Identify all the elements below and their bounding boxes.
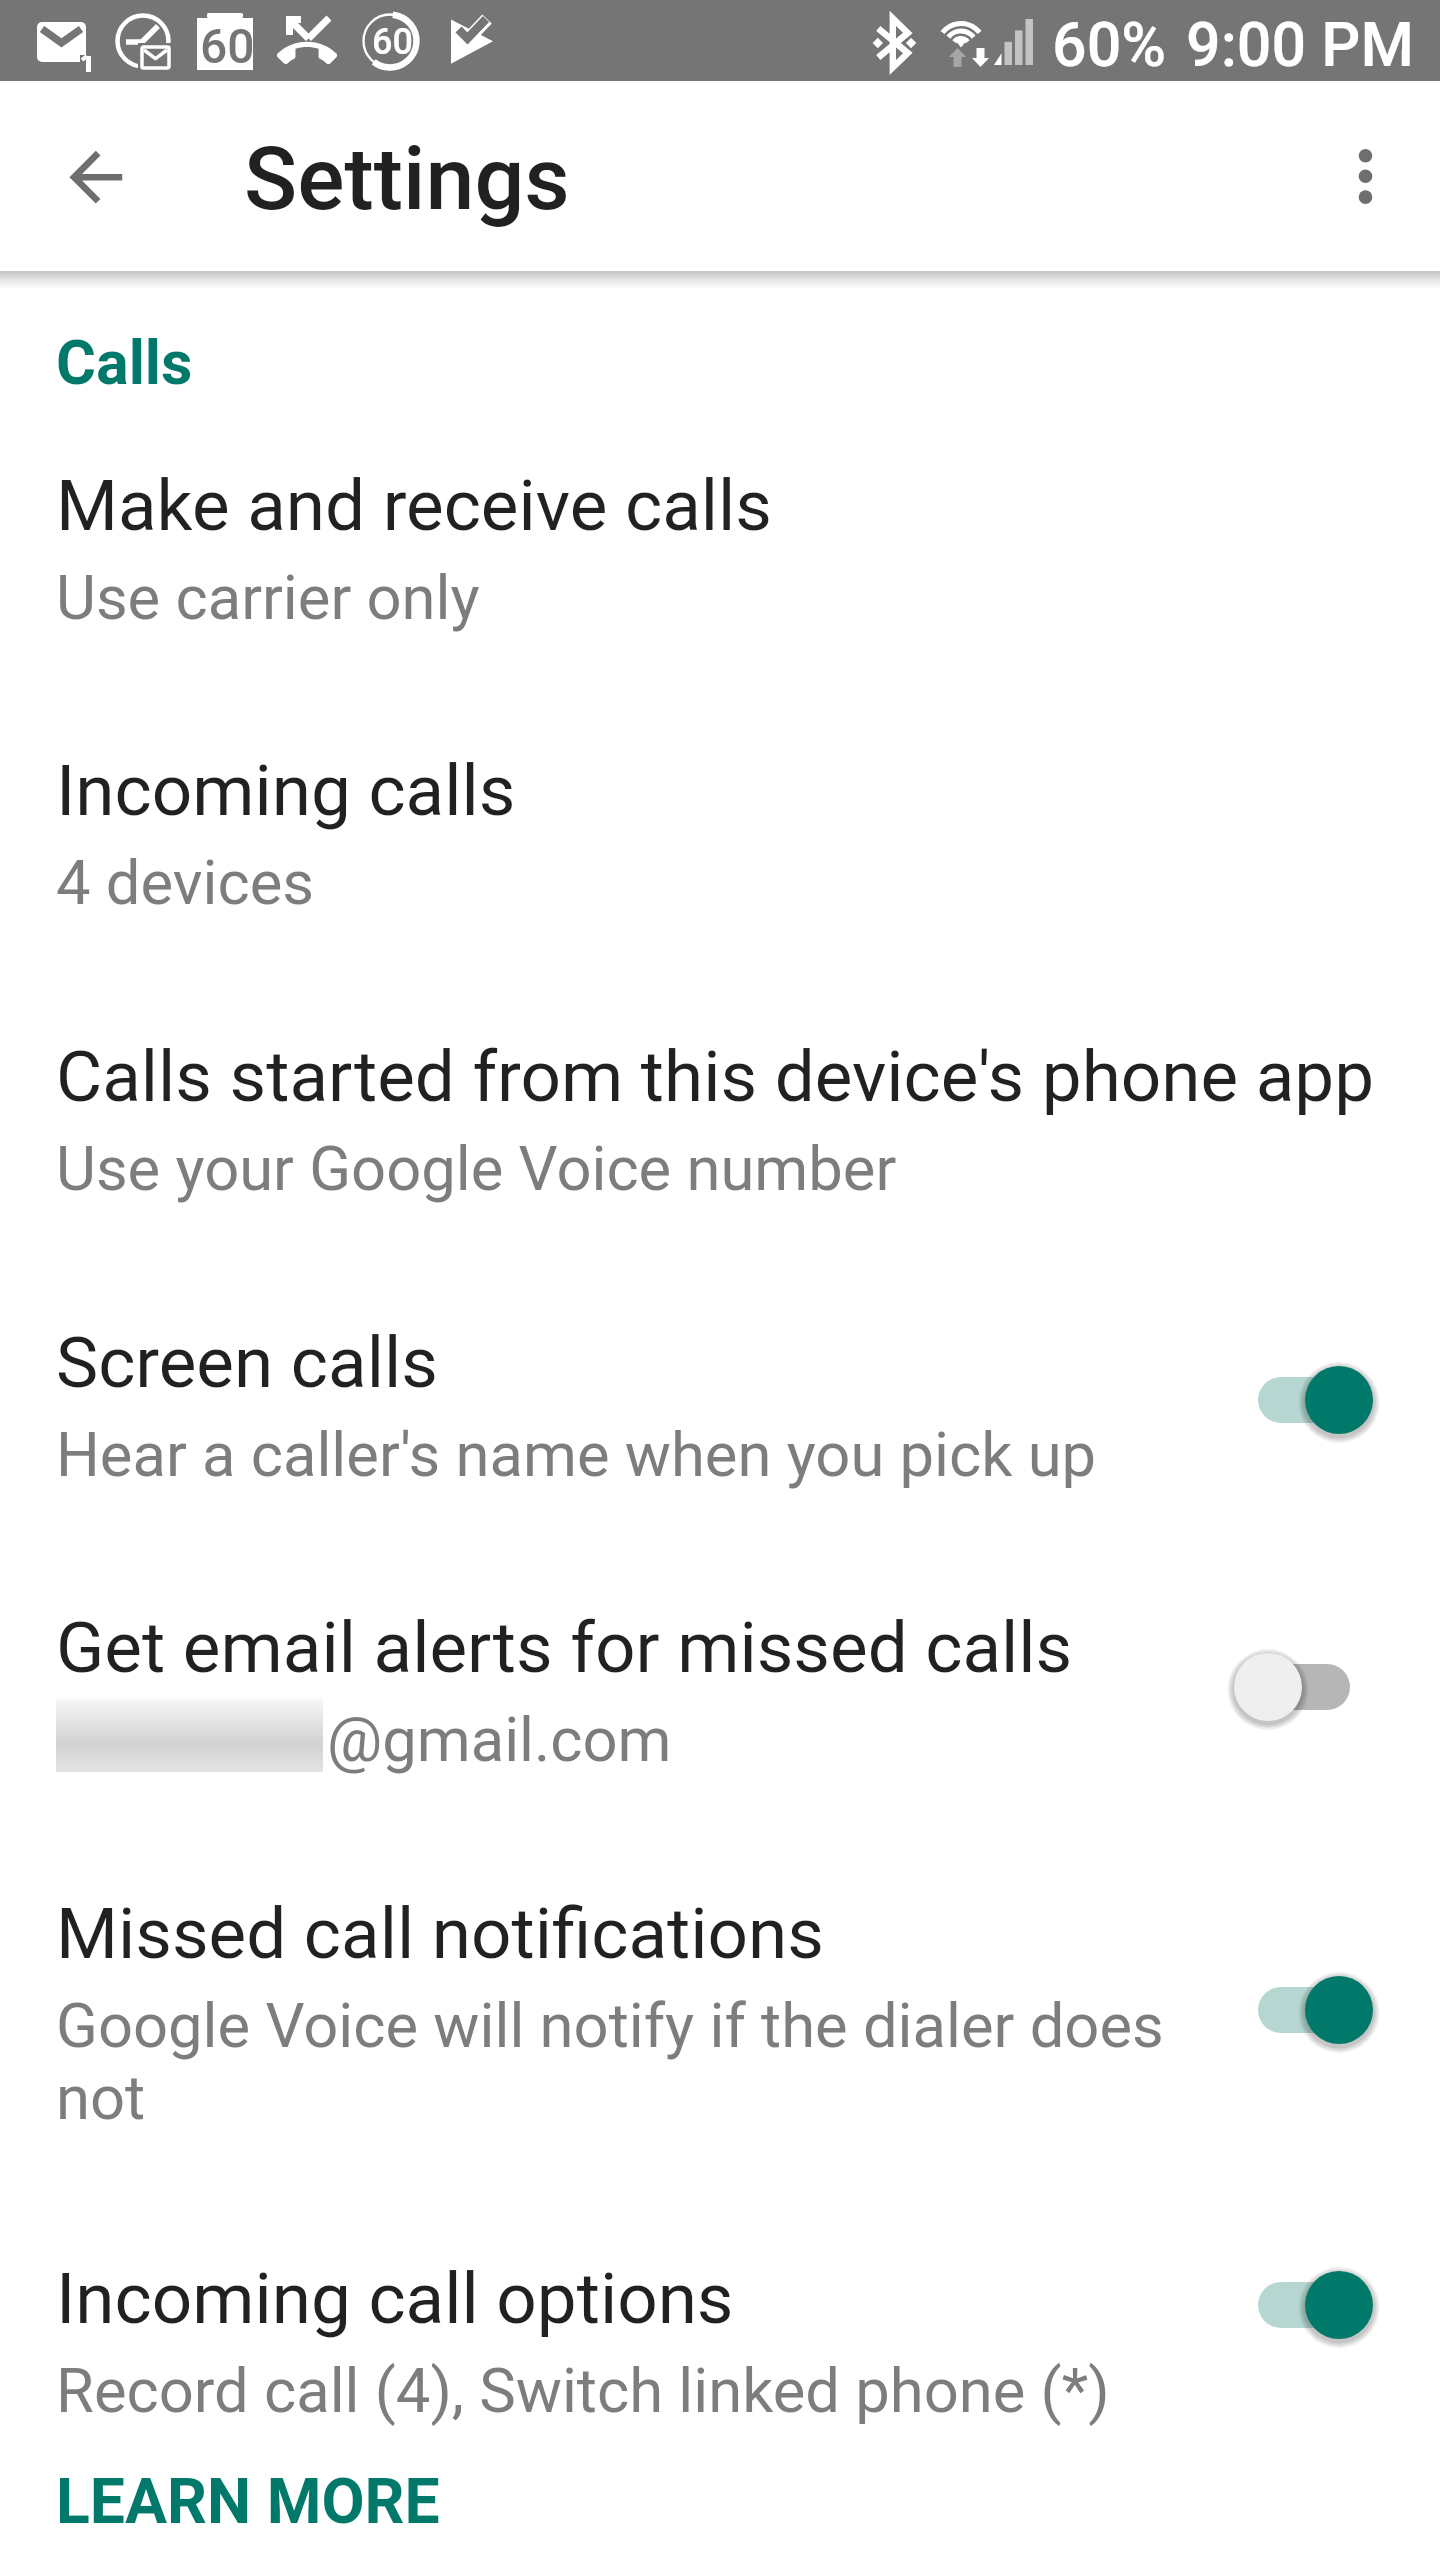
- staticText: Incoming call options: [56, 2257, 734, 2340]
- button[interactable]: Incoming calls: [0, 725, 1440, 1011]
- button[interactable]: Incoming call options: [0, 2233, 1440, 2519]
- staticText: 60: [200, 18, 255, 74]
- button[interactable]: Calls started from this device's phone a…: [0, 1011, 1440, 1297]
- staticText: Hear a caller's name when you pick up: [56, 1419, 1097, 1491]
- staticText: Record call (4), Switch linked phone (*): [56, 2355, 1110, 2427]
- button[interactable]: Make and receive calls: [0, 440, 1440, 726]
- staticText: @gmail.com: [327, 1704, 672, 1776]
- button[interactable]: Setting disabled: [1258, 1639, 1374, 1735]
- staticText: not: [56, 2062, 146, 2134]
- staticText: Settings: [244, 127, 570, 230]
- staticText: Use carrier only: [56, 562, 480, 634]
- staticText: 60: [372, 21, 413, 63]
- staticText: Use your Google Voice number: [56, 1133, 897, 1205]
- staticText: Screen calls: [56, 1321, 438, 1404]
- button[interactable]: Get email alerts for missed calls: [0, 1582, 1440, 1868]
- button[interactable]: Setting enabled: [1258, 1352, 1374, 1448]
- button[interactable]: LEARN MORE: [56, 2465, 440, 2538]
- button[interactable]: Back: [41, 122, 149, 230]
- button[interactable]: More options: [1315, 126, 1416, 227]
- button[interactable]: Screen calls: [0, 1297, 1440, 1583]
- button[interactable]: Setting enabled: [1258, 1962, 1374, 2058]
- staticText: 9:00 PM: [1186, 9, 1414, 80]
- staticText: 60%: [1052, 9, 1167, 80]
- staticText: Missed call notifications: [56, 1892, 824, 1975]
- staticText: Make and receive calls: [56, 464, 772, 547]
- staticText: Get email alerts for missed calls: [56, 1606, 1073, 1689]
- staticText: 4 devices: [56, 847, 315, 919]
- staticText: Google Voice will notify if the dialer d…: [56, 1990, 1164, 2062]
- staticText: LEARN MORE: [56, 2465, 440, 2538]
- staticText: Incoming calls: [56, 749, 516, 832]
- staticText: Calls: [56, 327, 193, 398]
- staticText: Calls started from this device's phone a…: [56, 1035, 1375, 1118]
- button[interactable]: Missed call notifications: [0, 1868, 1440, 2233]
- button[interactable]: Setting enabled: [1258, 2257, 1374, 2353]
